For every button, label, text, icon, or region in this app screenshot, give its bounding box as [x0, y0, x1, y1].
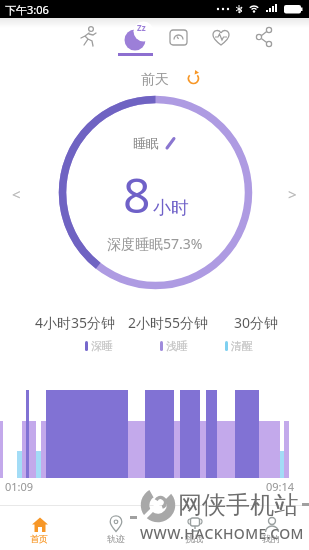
- staticText: 深睡: [91, 339, 113, 353]
- button[interactable]: Zz: [120, 20, 152, 54]
- staticText: WWW.HACKHOME.COM: [140, 524, 304, 543]
- button[interactable]: 首页: [0, 515, 77, 550]
- button[interactable]: [206, 22, 236, 52]
- staticText: 下午3:06: [5, 2, 49, 17]
- staticText: 轨迹: [107, 533, 125, 544]
- button[interactable]: 我的: [232, 515, 309, 550]
- staticText: 小时: [153, 197, 189, 220]
- staticText: 8: [123, 162, 151, 227]
- staticText: 挑战: [185, 533, 203, 544]
- button[interactable]: [163, 22, 193, 52]
- staticText: 01:09: [5, 479, 34, 494]
- button[interactable]: [72, 22, 102, 52]
- staticText: 睡眠: [133, 135, 159, 151]
- staticText: 首页: [30, 533, 48, 544]
- button[interactable]: [165, 137, 177, 149]
- staticText: 2小时55分钟: [128, 313, 209, 332]
- staticText: 30分钟: [234, 313, 279, 332]
- staticText: 我的: [262, 533, 280, 544]
- staticText: 浅睡: [166, 339, 188, 353]
- staticText: 网侠手机站: [178, 490, 298, 520]
- staticText: 清醒: [231, 339, 253, 353]
- button[interactable]: 轨迹: [77, 515, 154, 550]
- staticText: >: [288, 184, 297, 204]
- staticText: <: [12, 184, 21, 204]
- staticText: Zz: [137, 22, 146, 33]
- staticText: 深度睡眠57.3%: [107, 234, 203, 253]
- button[interactable]: [186, 70, 201, 85]
- staticText: 4小时35分钟: [35, 313, 116, 332]
- button[interactable]: 挑战: [155, 515, 232, 550]
- staticText: 09:14: [266, 479, 295, 494]
- button[interactable]: [249, 22, 279, 52]
- staticText: 前天: [141, 71, 169, 89]
